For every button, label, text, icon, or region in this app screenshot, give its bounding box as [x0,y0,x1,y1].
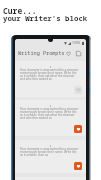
button[interactable]: Save prompt [74,125,82,133]
button[interactable]: Your character is approached by a strang… [15,100,86,136]
staticText: mysteriously knows their name. Write the… [20,150,81,153]
button[interactable]: Save prompt [74,162,82,170]
staticText: mysteriously knows their name. Write the… [20,71,81,74]
staticText: Your character is approached by a strang… [20,147,81,150]
button[interactable]: Save prompt [74,86,82,94]
staticText: and why they waited so [20,116,52,119]
staticText: as it unfolds, then ask what the strange… [20,113,81,116]
staticText: as it unfolds, then as [20,153,49,156]
button[interactable]: Favourites [64,49,72,57]
staticText: Writing Prompts [18,49,65,56]
staticText: Cure... [3,5,37,16]
staticText: your Writer's block [3,13,88,23]
staticText: as it unfolds, then ask what the strange… [20,74,81,77]
staticText: Your character is approached by a strang… [20,68,81,71]
staticText: 100% [72,41,81,45]
staticText: mysteriously knows their name. Write the… [20,110,81,113]
staticText: and why they waited so [20,77,52,80]
button[interactable]: Your character is approached by a strang… [15,140,86,173]
button[interactable]: Your character is approached by a strang… [15,61,86,97]
staticText: Your character is approached by a strang… [20,107,81,110]
button[interactable]: My prompts [74,49,82,57]
